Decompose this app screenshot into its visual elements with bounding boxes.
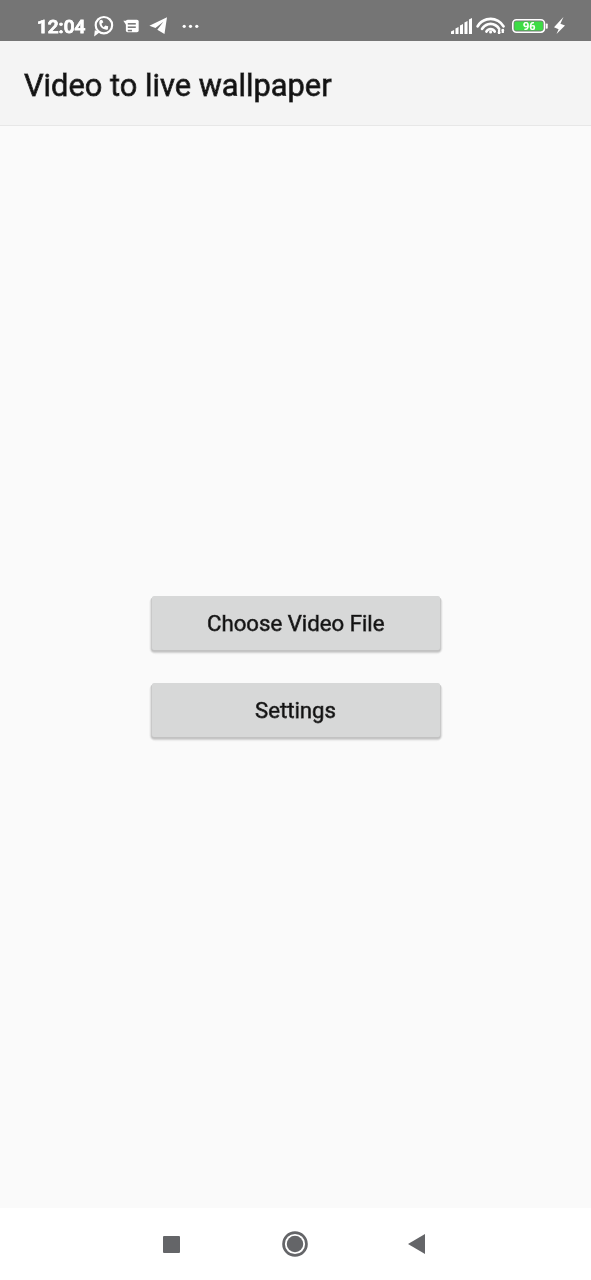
button[interactable]: Home — [265, 1214, 325, 1274]
button[interactable]: Recent apps — [141, 1214, 201, 1274]
staticText: Choose Video File — [207, 610, 385, 636]
staticText: Video to live wallpaper — [24, 67, 332, 103]
staticText: Video to live wallpaper — [24, 67, 332, 103]
button[interactable]: Back — [386, 1214, 446, 1274]
staticText: Settings — [255, 697, 337, 723]
staticText: Settings — [255, 697, 337, 723]
staticText: 12:04 — [37, 15, 86, 37]
staticText: Choose Video File — [207, 610, 385, 636]
staticText: 96 — [523, 20, 536, 33]
button[interactable]: Settings — [152, 683, 440, 737]
button[interactable]: Choose Video File — [152, 596, 440, 650]
staticText: 12:04 — [37, 15, 86, 37]
